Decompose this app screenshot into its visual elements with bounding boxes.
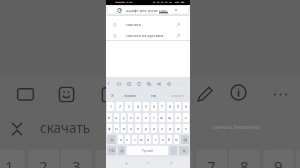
button[interactable]: о — [151, 124, 157, 133]
button[interactable]: search — [179, 146, 189, 155]
button[interactable]: х — [183, 113, 189, 122]
button[interactable]: з — [175, 113, 181, 122]
staticText: п — [137, 126, 140, 131]
button[interactable]: key — [162, 150, 193, 168]
button[interactable]: key — [0, 150, 25, 168]
button[interactable]: к — [128, 113, 133, 122]
button[interactable]: 3 — [125, 102, 132, 111]
button[interactable]: э — [183, 124, 189, 133]
button[interactable]: а — [128, 124, 133, 133]
button[interactable]: Translate — [144, 77, 154, 90]
button[interactable]: 5 — [143, 102, 149, 111]
button[interactable]: скачать — [106, 19, 190, 30]
staticText: скач — [159, 8, 168, 13]
staticText: ц — [115, 115, 118, 120]
button[interactable]: 9 — [175, 102, 181, 111]
staticText: 4 — [137, 104, 139, 109]
button[interactable]: Clear query — [173, 7, 179, 13]
staticText: м — [140, 137, 143, 142]
button[interactable]: 6 — [151, 102, 157, 111]
button[interactable]: с — [132, 135, 137, 144]
button[interactable]: й — [107, 113, 112, 122]
button[interactable]: щ — [167, 113, 173, 122]
button[interactable]: Back — [123, 160, 129, 166]
button[interactable]: 1 — [107, 102, 114, 111]
button[interactable]: ы — [114, 124, 119, 133]
button[interactable]: key — [263, 150, 294, 168]
button[interactable]: Clipboard — [134, 77, 144, 90]
button[interactable]: я — [118, 135, 123, 144]
staticText: у — [123, 115, 125, 120]
button[interactable]: Stickers — [124, 77, 134, 90]
button[interactable]: л — [159, 124, 165, 133]
staticText: 6 — [153, 104, 155, 109]
button[interactable]: е — [135, 113, 141, 122]
button[interactable]: key — [229, 150, 260, 168]
staticText: 8 — [169, 104, 171, 109]
staticText: з — [177, 115, 179, 120]
button[interactable]: у — [121, 113, 126, 122]
staticText: т — [155, 137, 157, 142]
button[interactable]: ф — [107, 124, 112, 133]
button[interactable]: н — [143, 113, 149, 122]
button[interactable]: key — [95, 150, 126, 168]
staticText: э — [185, 126, 187, 131]
button[interactable]: del — [181, 135, 189, 144]
button[interactable]: key — [28, 150, 59, 168]
button[interactable]: 2 — [116, 102, 123, 111]
staticText: с — [134, 137, 136, 142]
button[interactable]: 7 — [159, 102, 165, 111]
button[interactable]: р — [143, 124, 149, 133]
button[interactable]: Collapse suggestions — [106, 90, 118, 101]
button[interactable]: д — [167, 124, 173, 133]
button[interactable]: ь — [160, 135, 165, 144]
button[interactable]: Русский — [127, 146, 168, 155]
button[interactable]: шрифт для трека — [106, 5, 190, 15]
staticText: х — [185, 115, 187, 120]
button[interactable]: key — [196, 150, 227, 168]
button[interactable]: скачать на русском — [106, 30, 190, 41]
button[interactable]: ш — [159, 113, 165, 122]
button[interactable]: ю — [174, 135, 179, 144]
button[interactable]: ?123 — [107, 146, 116, 155]
button[interactable]: shift — [107, 135, 116, 144]
staticText: 0 — [185, 104, 187, 109]
button[interactable]: ж — [175, 124, 181, 133]
staticText: щ — [168, 115, 172, 120]
button[interactable]: key — [128, 150, 159, 168]
button[interactable]: key — [61, 150, 92, 168]
button[interactable]: emoji — [118, 146, 125, 155]
button[interactable]: Share — [154, 77, 164, 90]
button[interactable]: т — [153, 135, 158, 144]
button[interactable]: м — [139, 135, 144, 144]
staticText: 9 — [274, 156, 283, 168]
button[interactable]: скачать — [118, 90, 142, 101]
button[interactable]: 4 — [134, 102, 141, 111]
button[interactable]: скачать б — [165, 90, 190, 101]
staticText: 5 — [145, 104, 147, 109]
staticText: 1 — [110, 104, 112, 109]
button[interactable]: б — [167, 135, 172, 144]
button[interactable]: г — [151, 113, 157, 122]
button[interactable]: в — [121, 124, 126, 133]
button[interactable]: ч — [125, 135, 130, 144]
button[interactable]: скз — [142, 90, 165, 101]
button[interactable]: Recents — [168, 160, 174, 166]
staticText: ж — [177, 126, 180, 131]
button[interactable]: п — [135, 124, 141, 133]
button[interactable]: Settings — [164, 77, 174, 90]
staticText: ?123 — [109, 149, 115, 153]
staticText: 2 — [119, 104, 121, 109]
button[interactable]: 0 — [183, 102, 189, 111]
button[interactable]: 8 — [167, 102, 173, 111]
button[interactable]: Expand toolbar — [106, 77, 111, 90]
button[interactable]: и — [146, 135, 151, 144]
button[interactable]: Home — [145, 160, 151, 166]
button[interactable]: GIF — [114, 77, 124, 90]
staticText: л — [161, 126, 164, 131]
staticText: Русский — [142, 149, 153, 153]
button[interactable]: ц — [114, 113, 119, 122]
